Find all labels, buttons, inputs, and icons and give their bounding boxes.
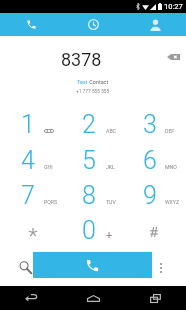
staticText: TUV	[106, 199, 116, 205]
staticText: PQRS	[44, 199, 58, 205]
button[interactable]: 4	[0, 136, 62, 171]
button[interactable]: Test	[76, 79, 110, 95]
staticText: ABC	[106, 128, 116, 134]
button[interactable]: 8	[62, 171, 124, 206]
staticText: 7	[21, 181, 35, 210]
button[interactable]: 2	[62, 100, 124, 136]
staticText: JKL	[106, 164, 115, 170]
staticText: 8	[82, 181, 96, 210]
staticText: 0	[82, 216, 96, 245]
staticText: DEF	[165, 128, 175, 134]
button[interactable]	[0, 206, 62, 241]
button[interactable]: More options	[150, 257, 172, 279]
button[interactable]: Call	[33, 252, 152, 278]
button[interactable]: Contacts tab	[124, 13, 186, 36]
button[interactable]: 6	[124, 136, 186, 171]
staticText: Test	[77, 79, 88, 85]
button[interactable]	[124, 206, 186, 241]
button[interactable]: 7	[0, 171, 62, 206]
button[interactable]: Dialpad tab	[0, 13, 62, 36]
button[interactable]: 3	[124, 100, 186, 136]
staticText: 6	[143, 146, 157, 175]
button[interactable]: 9	[124, 171, 186, 206]
staticText: 8378	[61, 49, 102, 70]
staticText: MNO	[165, 164, 177, 170]
staticText: 10:27	[164, 2, 183, 11]
button[interactable]: Backspace	[161, 45, 185, 69]
staticText: GHI	[44, 164, 53, 170]
staticText: 4	[21, 146, 35, 175]
staticText: 9	[143, 181, 157, 210]
button[interactable]: 0	[62, 206, 124, 241]
staticText: 1	[21, 110, 35, 139]
staticText: +1 777 555 555	[76, 89, 110, 95]
staticText: Contact	[88, 79, 109, 85]
staticText: 5	[82, 146, 96, 175]
button[interactable]: Home	[62, 286, 124, 310]
staticText: +	[106, 229, 113, 242]
button[interactable]: Call history tab	[62, 13, 124, 36]
button[interactable]: Back	[0, 286, 62, 310]
button[interactable]: Recent apps	[124, 286, 186, 310]
button[interactable]: Search	[13, 255, 37, 279]
staticText: WXYZ	[165, 199, 180, 205]
staticText: 3	[143, 110, 157, 139]
button[interactable]: 1	[0, 100, 62, 136]
staticText: 2	[82, 110, 96, 139]
button[interactable]: 5	[62, 136, 124, 171]
